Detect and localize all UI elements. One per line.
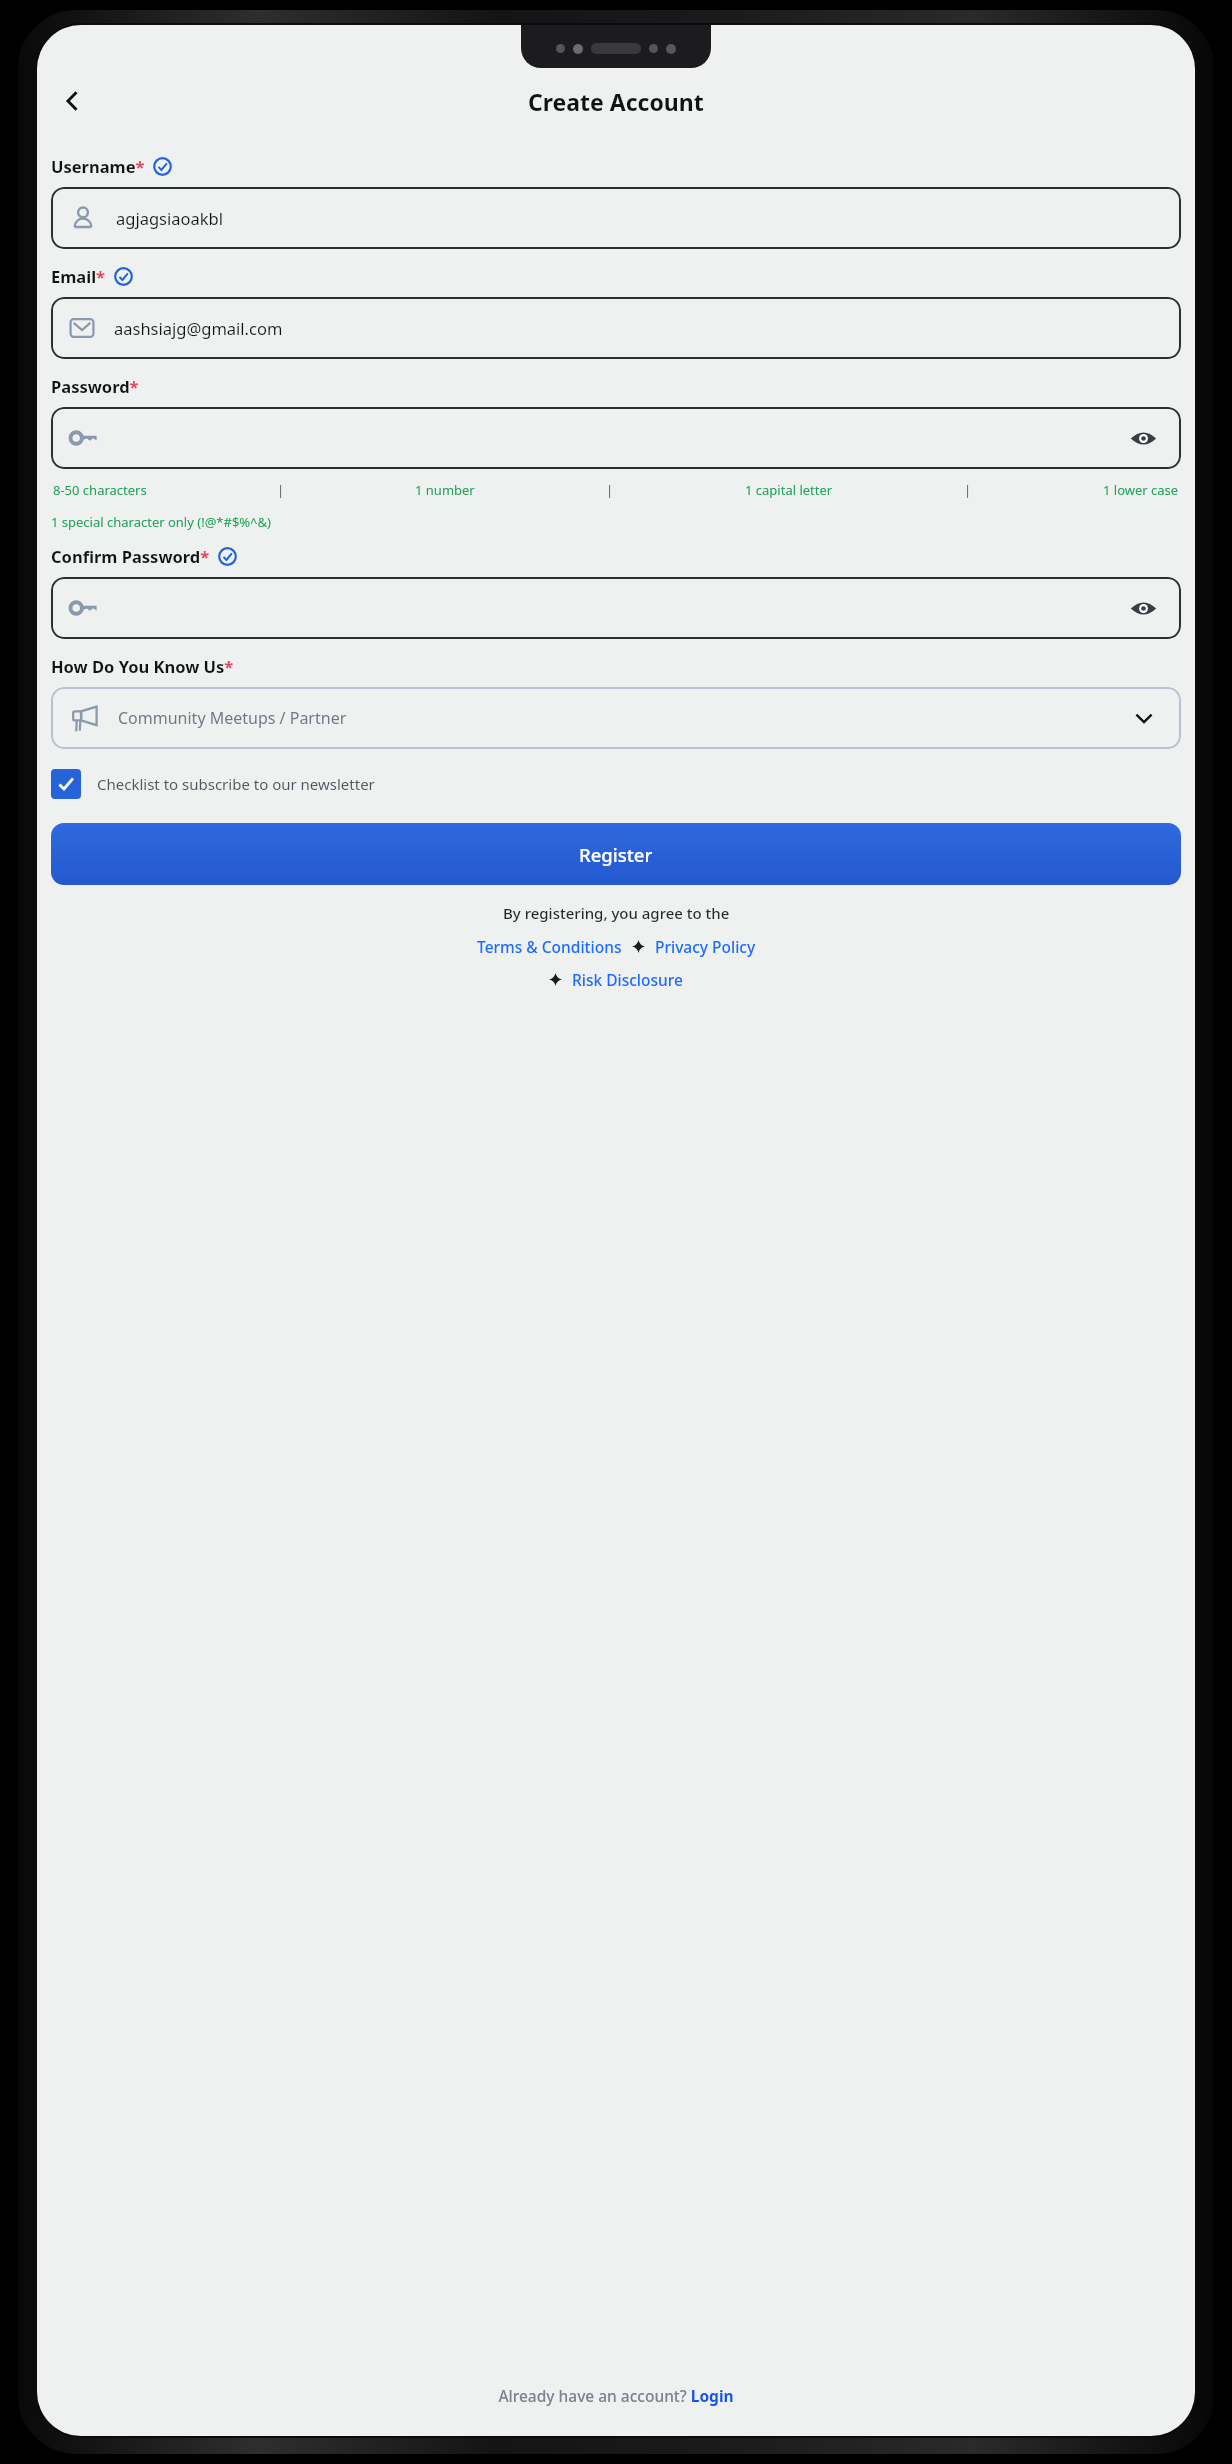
staticText: Password* [51, 375, 139, 397]
staticText: Community Meetups / Partner [118, 707, 347, 729]
staticText: Username* [51, 155, 145, 177]
staticText: 1 lower case [1103, 481, 1179, 499]
staticText: aashsiajg@gmail.com [114, 317, 283, 339]
staticText: 1 capital letter [745, 481, 833, 499]
button[interactable]: Show password [1123, 588, 1163, 628]
button[interactable]: Show password [51, 407, 1181, 469]
staticText: | [964, 481, 972, 499]
button[interactable]: Back [51, 79, 95, 123]
button[interactable]: Show password [1123, 418, 1163, 458]
staticText: | [606, 481, 614, 499]
button[interactable]: Show password [51, 577, 1181, 639]
staticText: | [277, 481, 285, 499]
staticText: Risk Disclosure [572, 969, 683, 990]
staticText: 1 number [415, 481, 475, 499]
button[interactable]: Already have an account? Login [498, 2385, 734, 2406]
staticText: By registering, you agree to the [503, 903, 730, 923]
staticText: 8-50 characters [53, 481, 147, 499]
button[interactable]: Terms & Conditions [477, 936, 622, 957]
button[interactable]: Privacy Policy [655, 936, 756, 957]
button[interactable]: Open dropdown [1125, 699, 1163, 737]
staticText: Create Account [528, 86, 704, 117]
staticText: Checklist to subscribe to our newsletter [97, 774, 375, 794]
button[interactable]: agjagsiaoakbl [51, 187, 1181, 249]
button[interactable]: Risk Disclosure [572, 969, 683, 990]
staticText: Confirm Password* [51, 545, 210, 567]
button[interactable]: Community Meetups / Partner [51, 687, 1181, 749]
button[interactable]: Register [51, 823, 1181, 885]
staticText: Email* [51, 265, 106, 287]
staticText: Terms & Conditions [477, 936, 622, 957]
button[interactable]: aashsiajg@gmail.com [51, 297, 1181, 359]
staticText: Privacy Policy [655, 936, 756, 957]
staticText: 1 special character only (!@*#$%^&) [51, 513, 271, 531]
staticText: agjagsiaoakbl [116, 207, 223, 229]
staticText: Already have an account? Login [498, 2385, 734, 2406]
staticText: Register [579, 842, 653, 867]
staticText: How Do You Know Us* [51, 655, 234, 677]
button[interactable]: Checklist to subscribe to our newsletter [51, 769, 1181, 799]
